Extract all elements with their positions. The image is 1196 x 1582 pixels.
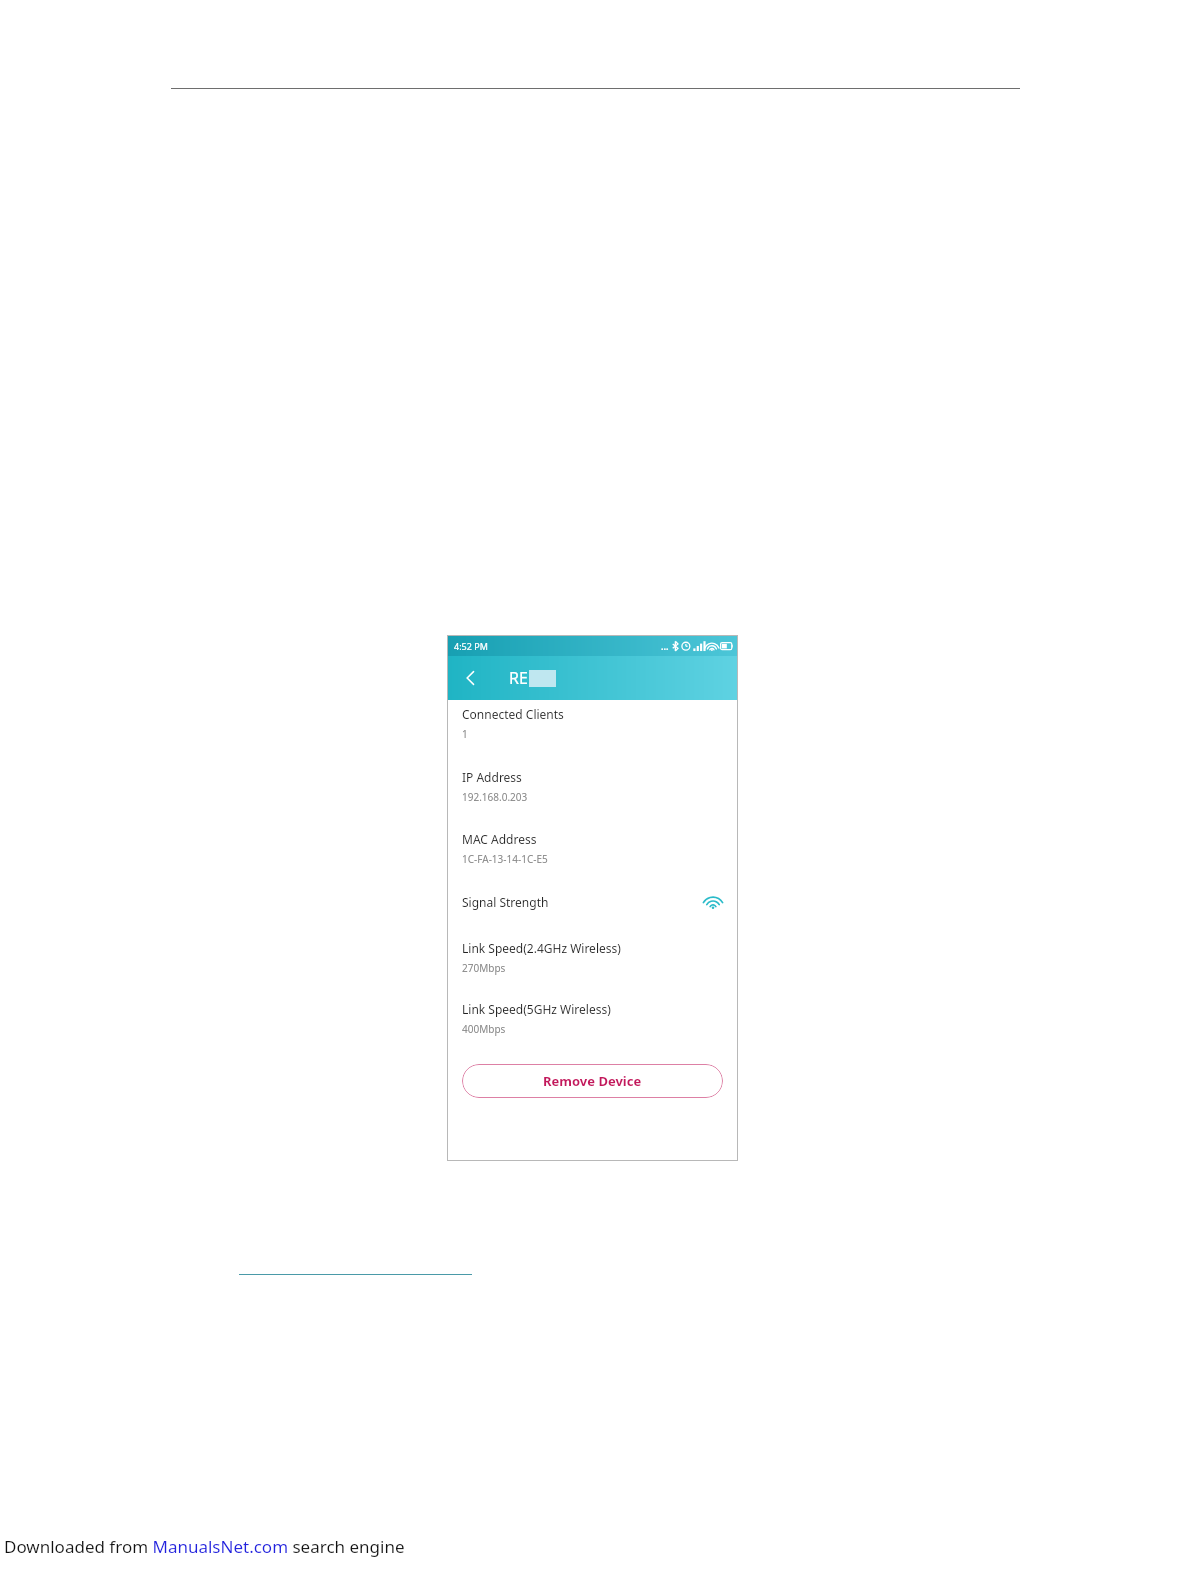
staticText: Signal Strength — [462, 894, 549, 910]
staticText: Link Speed(5GHz Wireless) — [462, 1001, 611, 1017]
button[interactable]: MAC Address — [462, 831, 723, 866]
staticText: 1C-FA-13-14-1C-E5 — [462, 852, 548, 866]
staticText: Downloaded from ManualsNet.com search en… — [4, 1535, 405, 1558]
staticText: 1 — [462, 727, 468, 741]
button[interactable]: IP Address — [462, 769, 723, 804]
staticText: 192.168.0.203 — [462, 790, 528, 804]
staticText: Connected Clients — [462, 706, 564, 722]
staticText: Link Speed(2.4GHz Wireless) — [462, 940, 621, 956]
staticText: 270Mbps — [462, 961, 506, 975]
button[interactable]: Remove Device — [462, 1064, 723, 1098]
staticText: 4:52 PM — [454, 640, 488, 652]
staticText: Remove Device — [543, 1072, 642, 1090]
staticText: RE — [509, 667, 528, 689]
staticText: ... — [661, 640, 669, 652]
staticText: MAC Address — [462, 831, 537, 847]
button[interactable]: Link Speed(2.4GHz Wireless) — [462, 940, 723, 975]
staticText: 400Mbps — [462, 1022, 506, 1036]
button[interactable]: Link Speed(5GHz Wireless) — [462, 1001, 723, 1036]
button[interactable]: Back — [455, 662, 487, 694]
button[interactable]: Signal Strength — [462, 889, 723, 915]
button[interactable]: Connected Clients — [462, 706, 723, 741]
staticText: IP Address — [462, 769, 522, 785]
